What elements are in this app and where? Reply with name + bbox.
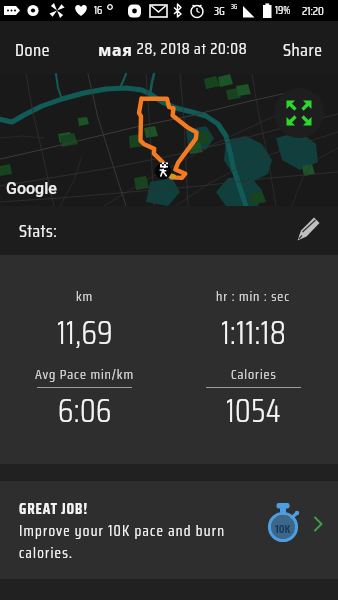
staticText: Done	[15, 36, 51, 59]
staticText: 21:20	[302, 1, 324, 20]
staticText: 11,69	[57, 308, 113, 358]
button[interactable]: Done	[0, 21, 66, 74]
staticText: 1054	[226, 386, 282, 436]
staticText: Google	[6, 179, 57, 198]
staticText: Avg Pace min/km	[35, 363, 134, 385]
staticText: 10K	[275, 519, 291, 538]
button[interactable]: Share	[268, 21, 338, 74]
staticText: 16	[94, 2, 103, 19]
staticText: 6:06	[58, 386, 112, 436]
staticText: 19%	[275, 2, 291, 19]
staticText: 1:11:18	[221, 308, 287, 358]
button[interactable]: Open training plan	[306, 511, 330, 535]
staticText: мая	[98, 39, 133, 61]
staticText: Calories	[231, 363, 277, 385]
button[interactable]: Expand map	[274, 88, 324, 138]
staticText: calories.	[19, 541, 74, 565]
staticText: 28, 2018 at 20:08	[133, 36, 248, 61]
staticText: hr : min : sec	[216, 285, 291, 307]
staticText: 3G	[231, 1, 238, 12]
staticText: Stats:	[19, 217, 58, 245]
button[interactable]: Edit	[296, 216, 322, 242]
button[interactable]: GREAT JOB!	[0, 481, 338, 579]
staticText: Improve your 10K pace and burn	[19, 519, 226, 543]
staticText: GREAT JOB!	[19, 497, 89, 521]
staticText: 3G	[214, 1, 225, 20]
staticText: Share	[283, 36, 323, 59]
staticText: km	[76, 285, 94, 307]
